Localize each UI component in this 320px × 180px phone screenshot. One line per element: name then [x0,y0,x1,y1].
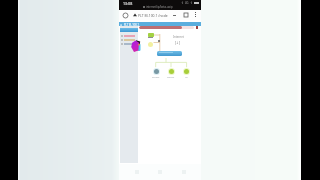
button[interactable]: Home [154,166,166,178]
staticText: Router [152,75,160,78]
button[interactable]: Recents [178,166,190,178]
staticText: ≡ PLT M-100.1 [120,23,139,27]
button[interactable]: More options [192,12,198,18]
staticText: internet/ip/beta-uoip [146,5,173,9]
staticText: ·ıl [181,1,184,5]
staticText: Switch [167,75,175,78]
staticText: Internet [173,35,184,39]
staticText: 4G [185,1,189,5]
button[interactable]: Reload [121,11,129,19]
staticText: AP [185,75,188,78]
staticText: 13:08 [123,1,133,6]
button[interactable]: Back [131,166,143,178]
staticText: ·ıl [190,1,193,5]
staticText: [↓] [175,40,181,45]
staticText: PLT M-100.1 /node [138,13,168,18]
button[interactable]: Tabs [183,12,189,18]
